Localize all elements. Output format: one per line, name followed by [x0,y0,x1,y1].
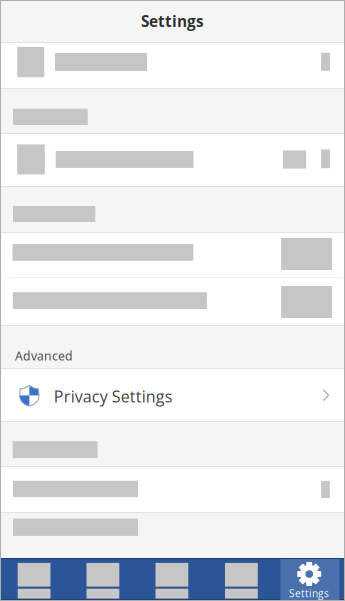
button[interactable]: Devices [86,559,119,600]
staticText: Privacy Settings [54,385,173,407]
button[interactable] [0,278,345,325]
staticText: Settings [141,11,204,31]
button[interactable]: Privacy Settings [0,369,345,421]
button[interactable] [0,134,345,186]
button[interactable]: Network [155,559,188,600]
staticText: Advanced [15,347,73,364]
button[interactable]: Account [225,559,258,600]
button[interactable]: Home [18,559,50,600]
staticText: Settings [289,586,329,600]
button[interactable] [0,43,345,88]
button[interactable]: Settings [281,559,339,600]
button[interactable] [0,233,345,277]
button[interactable] [0,467,345,512]
